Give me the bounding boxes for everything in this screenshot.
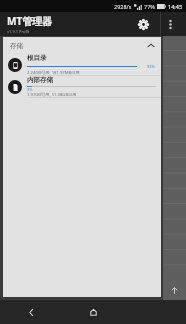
staticText: 3% [27,87,33,92]
button[interactable]: 存储 [3,37,161,54]
button[interactable]: Back [0,300,62,324]
button[interactable]: More options [162,16,178,32]
staticText: 存储 [10,42,23,50]
button[interactable]: Settings [133,14,153,34]
button[interactable]: 根目录 [3,54,161,75]
staticText: MT管理器 [7,14,53,28]
staticText: 根目录 [27,54,47,62]
staticText: 77% [144,3,155,10]
staticText: 2.24GB可用, 181.97MB已用 [27,70,80,75]
staticText: 1.97GB可用, 51.38GB已用 [27,92,77,97]
staticText: 14:45 [168,3,183,10]
button[interactable]: Home [62,300,124,324]
button[interactable]: Scroll to top [163,280,186,300]
button[interactable]: 内部存储 [3,76,161,97]
staticText: 内部存储 [27,76,53,84]
staticText: 93% [147,64,156,69]
staticText: v1.9.1 Pro版 [7,29,30,34]
staticText: 2928/s [114,3,132,10]
